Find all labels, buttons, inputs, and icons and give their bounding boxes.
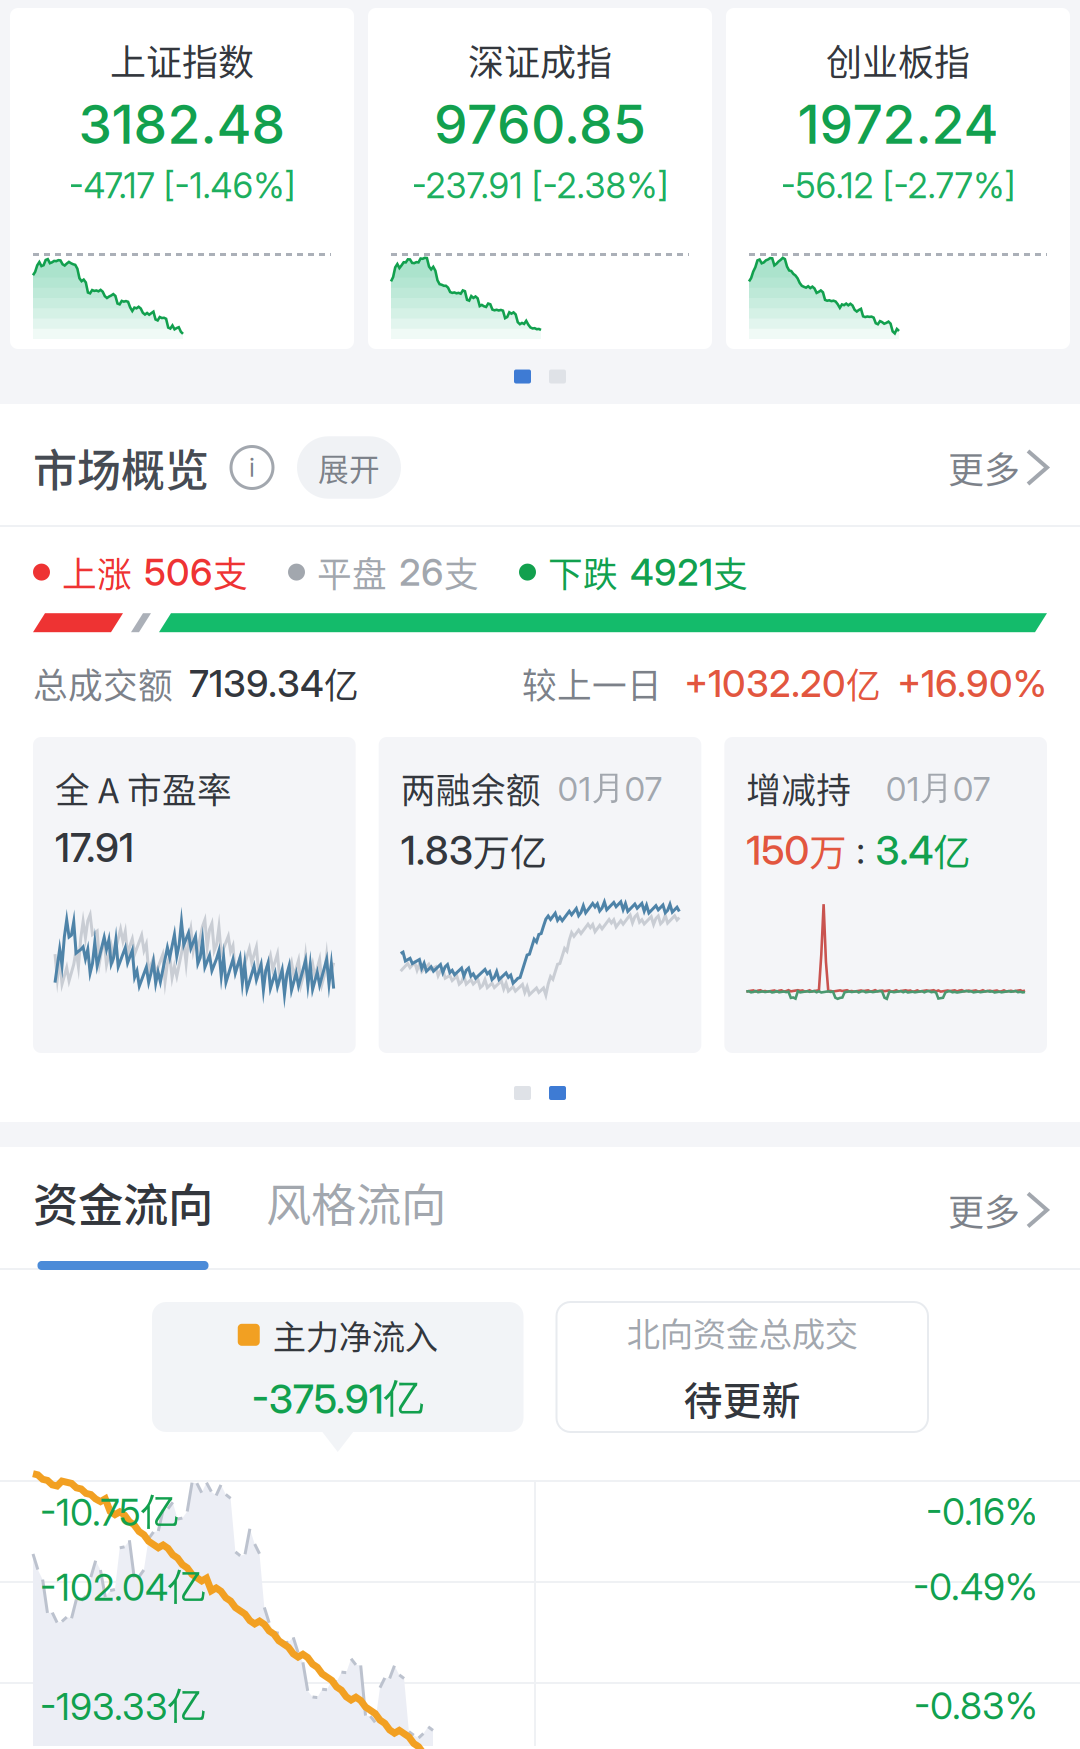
staticText: -237.91 [-2.38%] xyxy=(411,165,668,207)
staticText: 风格流向 xyxy=(266,1169,446,1235)
staticText: 支 xyxy=(213,547,248,597)
staticText: 上涨 xyxy=(62,547,132,597)
staticText: 1972.24 xyxy=(797,92,998,157)
staticText: 两融余额 xyxy=(401,763,541,813)
staticText: 下跌 xyxy=(548,547,618,597)
button[interactable]: 上证指数 xyxy=(10,8,354,349)
staticText: 4921 xyxy=(630,549,713,595)
staticText: 市场概览 xyxy=(33,436,209,499)
staticText: 平盘 xyxy=(317,547,387,597)
staticText: 待更新 xyxy=(684,1370,801,1426)
staticText: 1.83 xyxy=(401,826,473,874)
staticText: 506 xyxy=(144,549,213,595)
button[interactable]: 深证成指 xyxy=(368,8,712,349)
button[interactable]: 风格流向 xyxy=(213,1169,446,1270)
button[interactable]: 增减持 xyxy=(724,737,1047,1053)
staticText: 01月07 xyxy=(557,767,662,809)
button[interactable]: 更多 xyxy=(948,441,1047,493)
staticText: 北向资金总成交 xyxy=(627,1308,858,1356)
staticText: 01月07 xyxy=(886,767,991,809)
button[interactable]: 展开 xyxy=(297,436,401,499)
staticText: 深证成指 xyxy=(468,34,612,86)
staticText: 更多 xyxy=(948,441,1020,493)
staticText: i xyxy=(249,452,255,483)
staticText: -0.49% xyxy=(913,1564,1038,1609)
button[interactable]: 主力净流入 xyxy=(152,1302,523,1432)
button[interactable]: 资金流向 xyxy=(33,1163,213,1270)
staticText: 资金流向 xyxy=(33,1169,213,1235)
staticText: -193.33亿 xyxy=(40,1682,205,1729)
staticText: 3182.48 xyxy=(78,92,285,157)
staticText: 支 xyxy=(713,547,748,597)
staticText: 总成交额 xyxy=(33,658,173,708)
staticText: 亿 xyxy=(933,823,970,877)
staticText: 亿 xyxy=(846,658,881,708)
staticText: -0.83% xyxy=(914,1683,1038,1728)
staticText: -375.91亿 xyxy=(252,1373,424,1423)
staticText: 150 xyxy=(746,826,809,874)
staticText: 万 xyxy=(809,823,846,877)
staticText: -10.75亿 xyxy=(40,1488,178,1535)
staticText: 万亿 xyxy=(473,823,547,877)
staticText: +16.90% xyxy=(897,661,1047,706)
staticText: 亿 xyxy=(324,658,359,708)
button[interactable]: 全 A 市盈率 xyxy=(33,737,356,1053)
staticText: : xyxy=(846,828,875,873)
staticText: -47.17 [-1.46%] xyxy=(68,165,295,207)
button[interactable]: 创业板指 xyxy=(726,8,1070,349)
staticText: +1032.20 xyxy=(684,661,846,706)
staticText: 9760.85 xyxy=(434,92,646,157)
staticText: 创业板指 xyxy=(826,34,970,86)
button[interactable]: 北向资金总成交 xyxy=(556,1302,928,1432)
button[interactable]: 更多 xyxy=(948,1184,1047,1236)
button[interactable]: 两融余额 xyxy=(379,737,701,1053)
staticText: 全 A 市盈率 xyxy=(55,763,232,813)
staticText: 主力净流入 xyxy=(273,1311,438,1359)
staticText: -102.04亿 xyxy=(40,1563,205,1610)
staticText: 支 xyxy=(444,547,479,597)
staticText: 7139.34 xyxy=(189,661,324,706)
staticText: 展开 xyxy=(318,445,380,490)
staticText: 上证指数 xyxy=(110,34,254,86)
staticText: -56.12 [-2.77%] xyxy=(780,165,1015,207)
staticText: 17.91 xyxy=(55,823,134,872)
staticText: 增减持 xyxy=(746,763,851,813)
staticText: 26 xyxy=(399,549,444,595)
staticText: 3.4 xyxy=(875,826,933,874)
staticText: -0.16% xyxy=(926,1489,1038,1534)
staticText: 更多 xyxy=(948,1184,1020,1236)
staticText: 较上一日 xyxy=(522,658,662,708)
